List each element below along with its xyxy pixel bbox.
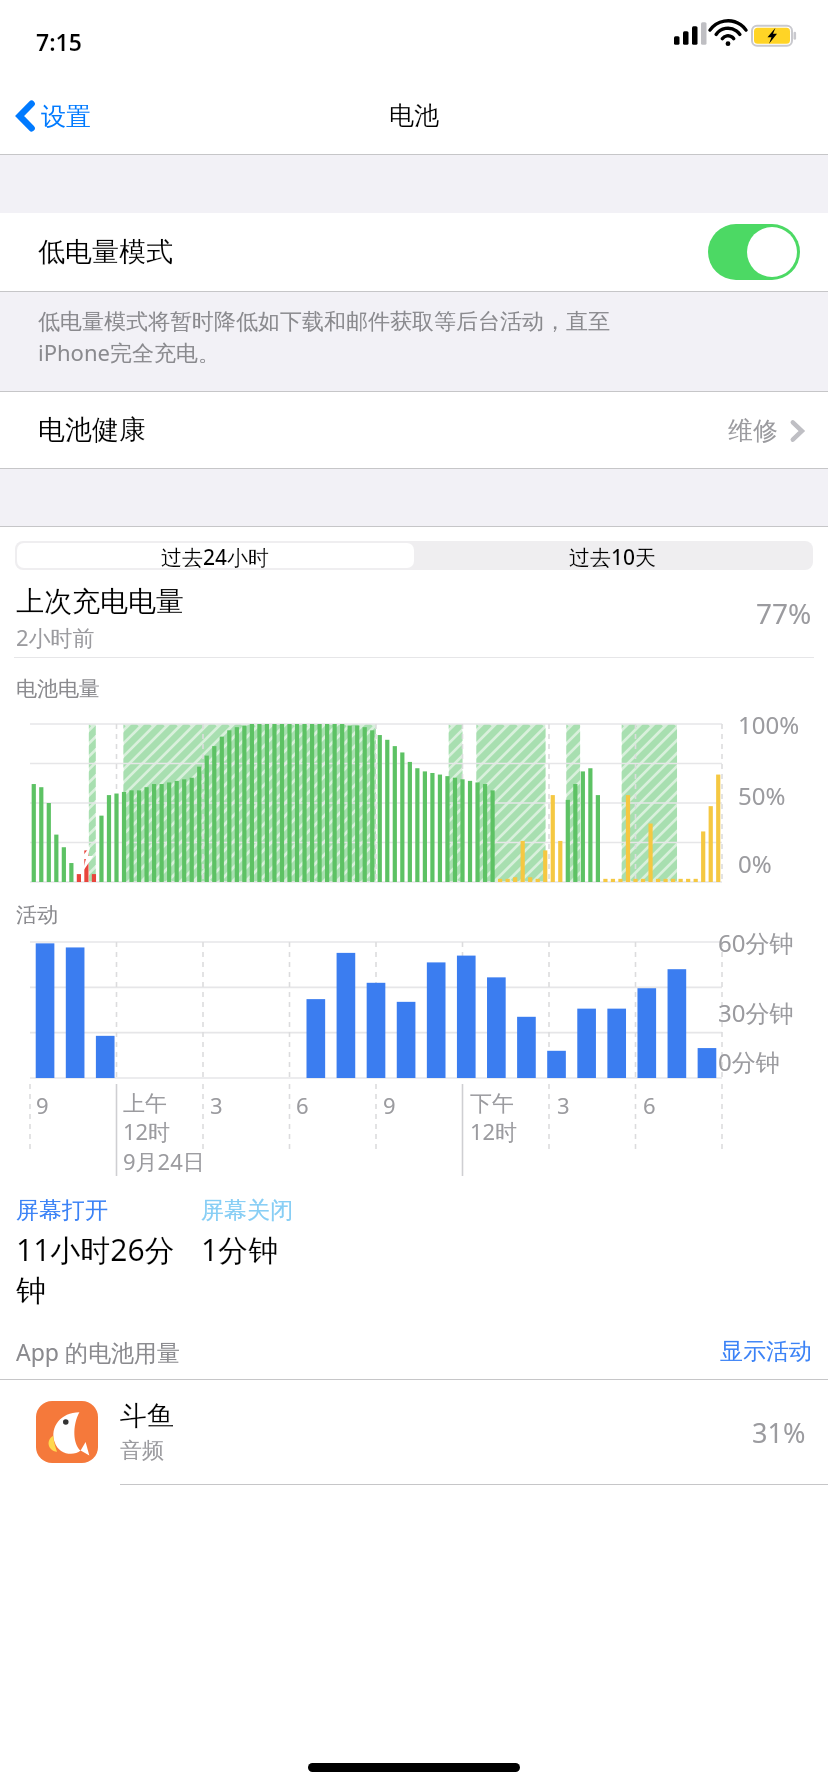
staticText: 100% <box>738 708 800 741</box>
staticText: 7:15 <box>36 26 82 57</box>
staticText: 屏幕打开 <box>16 1196 108 1225</box>
staticText: 60分钟 <box>718 926 794 959</box>
staticText: 维修 <box>728 415 778 446</box>
staticText: 3 <box>210 1090 223 1120</box>
button[interactable]: 过去24小时 <box>17 543 414 568</box>
button[interactable]: 电池健康 <box>0 392 828 468</box>
staticText: 低电量模式将暂时降低如下载和邮件获取等后台活动，直至 iPhone完全充电。 <box>38 308 610 367</box>
staticText: 31% <box>752 1414 806 1451</box>
staticText: 过去10天 <box>569 543 657 568</box>
staticText: 斗鱼 <box>120 1399 174 1433</box>
button[interactable]: 过去10天 <box>414 543 811 568</box>
staticText: 0分钟 <box>718 1045 780 1078</box>
staticText: 30分钟 <box>718 996 794 1029</box>
staticText: 设置 <box>41 101 91 132</box>
button[interactable]: 斗鱼 <box>0 1380 828 1484</box>
button[interactable]: 屏幕打开 <box>16 1196 201 1310</box>
staticText: 显示活动 <box>720 1337 812 1366</box>
staticText: 0% <box>738 847 772 880</box>
staticText: 电池电量 <box>16 676 100 702</box>
button[interactable]: 设置 <box>0 91 103 141</box>
staticText: 过去24小时 <box>161 543 270 568</box>
staticText: 6 <box>296 1090 309 1120</box>
staticText: 电池健康 <box>38 413 146 447</box>
staticText: 9 <box>36 1090 49 1120</box>
staticText: 1分钟 <box>201 1229 279 1270</box>
staticText: 低电量模式 <box>38 235 173 269</box>
staticText: 2小时前 <box>16 622 95 652</box>
staticText: 电池 <box>389 100 439 131</box>
staticText: App 的电池用量 <box>16 1336 720 1367</box>
button[interactable]: 屏幕关闭 <box>201 1196 293 1270</box>
staticText: 音频 <box>120 1437 164 1465</box>
button[interactable]: 低电量模式开关 <box>708 224 800 280</box>
staticText: 9月24日 <box>123 1146 205 1176</box>
staticText: 屏幕关闭 <box>201 1196 293 1225</box>
staticText: 11小时26分钟 <box>16 1229 201 1310</box>
staticText: 上午 12时 <box>123 1090 171 1147</box>
staticText: 50% <box>738 779 786 812</box>
staticText: 9 <box>383 1090 396 1120</box>
button[interactable]: 低电量模式 <box>0 213 828 291</box>
staticText: 上次充电电量 <box>16 584 184 619</box>
button[interactable]: 显示活动 <box>720 1337 812 1366</box>
staticText: 3 <box>557 1090 570 1120</box>
staticText: 6 <box>643 1090 656 1120</box>
staticText: 77% <box>756 594 812 632</box>
staticText: 下午 12时 <box>470 1090 518 1147</box>
staticText: 活动 <box>16 902 58 928</box>
